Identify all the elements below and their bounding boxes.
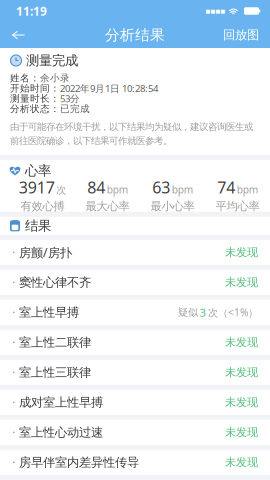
staticText: 心率	[25, 162, 51, 179]
staticText: 房早伴室内差异性传导	[19, 455, 139, 470]
staticText: 房颤/房扑	[19, 244, 72, 261]
button[interactable]: 室上性二联律	[0, 330, 270, 355]
staticText: 分析结果	[105, 26, 165, 44]
staticText: 未发现	[225, 275, 258, 289]
button[interactable]: 房早伴室内差异性传导	[0, 450, 270, 475]
staticText: 窦性心律不齐	[19, 275, 91, 290]
staticText: 室上性心动过速	[19, 425, 103, 440]
staticText: 84	[87, 176, 105, 198]
button[interactable]: 成对室上性早搏	[0, 390, 270, 415]
staticText: 53分	[60, 92, 80, 105]
staticText: bpm	[107, 183, 128, 196]
button[interactable]: 室上性早搏	[0, 300, 270, 325]
staticText: 由于可能存在环境干扰，以下结果均为疑似，建议咨询医生或前往医院确诊，以下结果可作…	[10, 121, 253, 147]
button[interactable]: 回放图	[212, 22, 270, 48]
staticText: 姓名：	[10, 72, 40, 84]
staticText: 室上性三联律	[19, 365, 91, 380]
staticText: bpm	[172, 183, 193, 196]
staticText: 结果	[25, 217, 51, 234]
staticText: 次（<1%）	[208, 305, 258, 319]
staticText: 未发现	[225, 455, 258, 469]
button[interactable]: 室上性三联律	[0, 360, 270, 385]
button[interactable]: 室上性心动过速	[0, 420, 270, 445]
staticText: 未发现	[225, 425, 258, 439]
staticText: 次	[56, 184, 66, 196]
button[interactable]: 房颤/房扑	[0, 240, 270, 265]
staticText: 未发现	[225, 245, 258, 259]
staticText: 11:19	[16, 3, 47, 19]
button[interactable]: 窦性心律不齐	[0, 270, 270, 295]
staticText: 2022年9月1日 10:28:54	[60, 82, 158, 95]
staticText: 测量完成	[26, 52, 78, 69]
staticText: 未发现	[225, 395, 258, 409]
staticText: 未发现	[225, 365, 258, 379]
staticText: bpm	[237, 183, 258, 196]
staticText: 成对室上性早搏	[19, 395, 103, 410]
button[interactable]: 返回	[0, 22, 37, 48]
staticText: 余小录	[40, 72, 70, 84]
staticText: 未发现	[225, 335, 258, 349]
staticText: 室上性早搏	[19, 305, 79, 320]
staticText: 74	[217, 176, 235, 198]
staticText: ▪▪▪▪	[205, 6, 225, 16]
staticText: 疑似	[178, 306, 198, 319]
staticText: 3917	[19, 176, 55, 198]
staticText: 回放图	[223, 27, 259, 43]
staticText: 63	[152, 176, 170, 198]
staticText: 已完成	[60, 103, 90, 115]
staticText: 有效心搏	[20, 199, 64, 213]
staticText: 最大心率	[85, 199, 129, 213]
staticText: 3	[199, 304, 206, 320]
staticText: 平均心率	[215, 199, 259, 213]
staticText: 开始时间：	[10, 82, 60, 94]
staticText: 室上性二联律	[19, 335, 91, 350]
staticText: 测量时长：	[10, 92, 60, 105]
staticText: 最小心率	[150, 199, 194, 213]
staticText: 分析状态：	[10, 103, 60, 115]
